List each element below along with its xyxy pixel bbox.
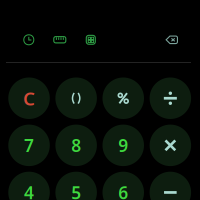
button[interactable]: C — [8, 77, 50, 119]
button[interactable] — [55, 77, 97, 119]
staticText: C — [23, 86, 35, 111]
staticText: 6 — [118, 181, 128, 200]
staticText: 4 — [24, 181, 34, 200]
button[interactable] — [150, 77, 191, 119]
button[interactable]: 9 — [102, 125, 144, 166]
button[interactable] — [102, 77, 144, 119]
staticText: 9 — [118, 134, 128, 157]
button[interactable]: Delete — [156, 28, 187, 52]
button[interactable] — [150, 172, 191, 200]
staticText: 5 — [71, 181, 81, 200]
button[interactable]: Converter — [44, 28, 75, 52]
button[interactable]: 4 — [8, 172, 50, 200]
button[interactable]: Calculator — [75, 28, 106, 52]
button[interactable]: 7 — [8, 125, 50, 166]
staticText: 8 — [71, 134, 81, 157]
button[interactable]: 5 — [55, 172, 97, 200]
staticText: 7 — [24, 134, 34, 157]
button[interactable]: 6 — [102, 172, 144, 200]
button[interactable]: 8 — [55, 125, 97, 166]
button[interactable]: History — [13, 28, 44, 52]
button[interactable] — [150, 125, 191, 166]
